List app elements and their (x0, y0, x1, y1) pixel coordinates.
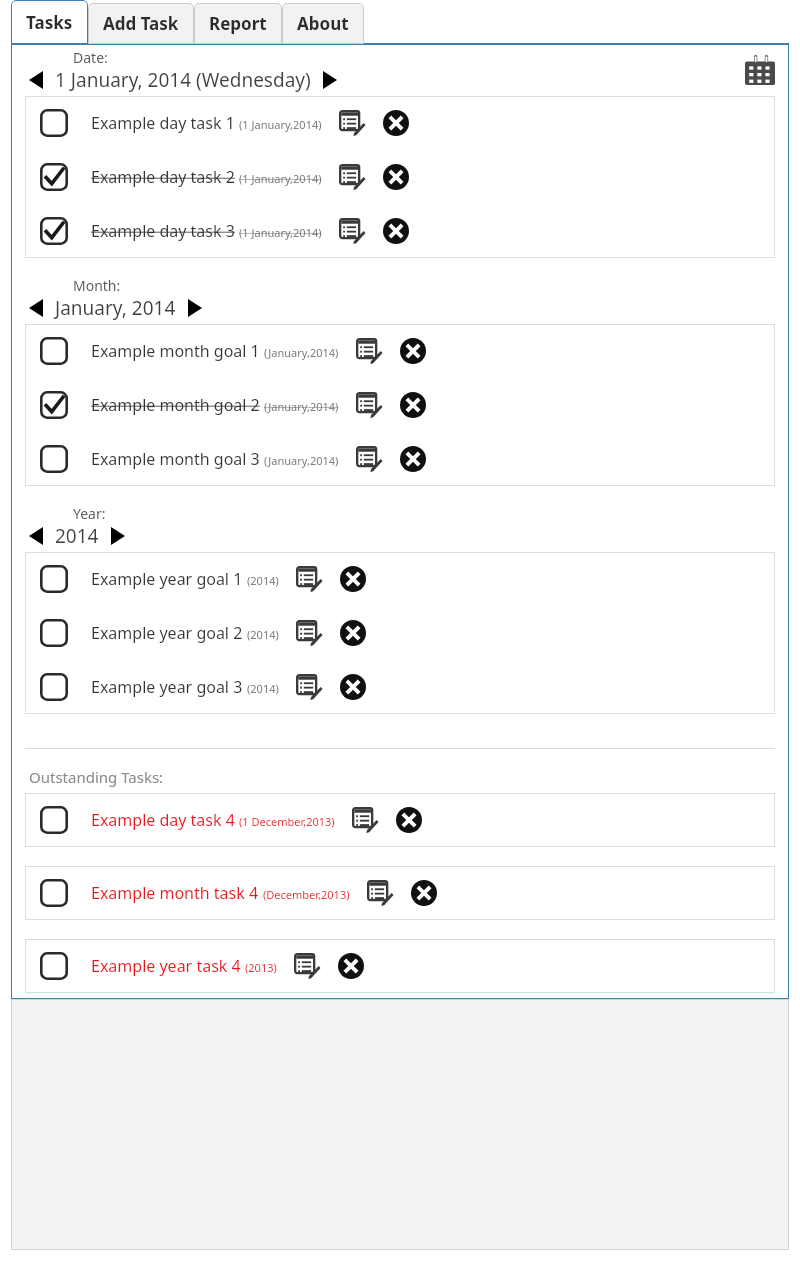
button[interactable]: Toggle done (25, 204, 775, 258)
button[interactable]: Previous (25, 297, 47, 319)
button[interactable]: Toggle done (37, 106, 71, 140)
button[interactable]: Next (107, 525, 129, 547)
button[interactable]: Delete task (337, 617, 369, 649)
staticText: Report (209, 12, 267, 35)
button[interactable]: Add Task (88, 3, 194, 44)
button[interactable]: Previous (25, 69, 47, 91)
staticText: (January,2014) (264, 345, 339, 360)
staticText: 2014 (55, 523, 99, 549)
button[interactable]: Edit task (364, 877, 396, 909)
button[interactable]: Next (319, 69, 341, 91)
staticText: Month: (73, 276, 121, 295)
staticText: Add Task (103, 12, 179, 35)
staticText: (2013) (245, 960, 277, 975)
staticText: Example year task 4 (91, 955, 241, 977)
staticText: (1 January,2014) (239, 171, 322, 186)
button[interactable]: Edit task (293, 563, 325, 595)
button[interactable]: Delete task (380, 161, 412, 193)
button[interactable]: Delete task (337, 563, 369, 595)
button[interactable]: Edit task (336, 215, 368, 247)
button[interactable]: Edit task (293, 617, 325, 649)
button[interactable]: Toggle done (37, 160, 71, 194)
staticText: Example month task 4 (91, 882, 259, 904)
button[interactable]: Toggle done (25, 324, 775, 378)
staticText: (2014) (247, 573, 279, 588)
button[interactable]: Edit task (336, 161, 368, 193)
button[interactable]: Delete task (380, 215, 412, 247)
button[interactable]: Toggle done (25, 150, 775, 204)
button[interactable]: Delete task (397, 335, 429, 367)
staticText: Example year goal 3 (91, 676, 243, 698)
staticText: Date: (73, 48, 108, 67)
button[interactable]: Toggle done (37, 616, 71, 650)
staticText: Example day task 4 (91, 809, 235, 831)
button[interactable]: Previous (25, 525, 47, 547)
button[interactable]: Tasks (11, 0, 88, 44)
button[interactable]: About (282, 3, 364, 44)
button[interactable]: Edit task (293, 671, 325, 703)
staticText: Example month goal 1 (91, 340, 260, 362)
button[interactable]: Edit task (353, 389, 385, 421)
staticText: (1 January,2014) (239, 225, 322, 240)
staticText: Example month goal 3 (91, 448, 260, 470)
staticText: Outstanding Tasks: (29, 767, 164, 787)
staticText: (December,2013) (263, 887, 350, 902)
button[interactable]: Delete task (397, 389, 429, 421)
button[interactable]: Edit task (349, 804, 381, 836)
staticText: Example month goal 2 (91, 394, 260, 416)
button[interactable]: Pick date (745, 55, 775, 85)
button[interactable]: Toggle done (25, 866, 775, 920)
button[interactable]: Toggle done (25, 552, 775, 606)
button[interactable]: Delete task (380, 107, 412, 139)
button[interactable]: Report (194, 3, 282, 44)
staticText: Example year goal 2 (91, 622, 243, 644)
button[interactable]: Delete task (337, 671, 369, 703)
staticText: (January,2014) (264, 453, 339, 468)
staticText: About (297, 12, 349, 35)
button[interactable]: Toggle done (25, 793, 775, 847)
button[interactable]: Toggle done (25, 939, 775, 993)
button[interactable]: Toggle done (25, 606, 775, 660)
button[interactable]: Toggle done (25, 96, 775, 150)
button[interactable]: Toggle done (37, 442, 71, 476)
staticText: Example day task 1 (91, 112, 235, 134)
staticText: (1 January,2014) (239, 117, 322, 132)
button[interactable]: Toggle done (37, 388, 71, 422)
button[interactable]: Edit task (336, 107, 368, 139)
staticText: (January,2014) (264, 399, 339, 414)
button[interactable]: Toggle done (37, 214, 71, 248)
button[interactable]: Toggle done (25, 432, 775, 486)
button[interactable]: Edit task (291, 950, 323, 982)
button[interactable]: Delete task (335, 950, 367, 982)
button[interactable]: Delete task (393, 804, 425, 836)
staticText: Example year goal 1 (91, 568, 243, 590)
button[interactable]: Toggle done (37, 562, 71, 596)
button[interactable]: Next (184, 297, 206, 319)
staticText: Example day task 2 (91, 166, 235, 188)
staticText: (2014) (247, 627, 279, 642)
button[interactable]: Toggle done (37, 803, 71, 837)
button[interactable]: Toggle done (37, 334, 71, 368)
button[interactable]: Toggle done (37, 670, 71, 704)
button[interactable]: Delete task (408, 877, 440, 909)
staticText: Example day task 3 (91, 220, 235, 242)
staticText: (1 December,2013) (239, 814, 335, 829)
button[interactable]: Toggle done (25, 378, 775, 432)
staticText: Year: (73, 504, 106, 523)
button[interactable]: Edit task (353, 335, 385, 367)
button[interactable]: Toggle done (37, 876, 71, 910)
button[interactable]: Delete task (397, 443, 429, 475)
staticText: Tasks (26, 11, 73, 34)
button[interactable]: Toggle done (37, 949, 71, 983)
staticText: January, 2014 (55, 295, 176, 321)
button[interactable]: Toggle done (25, 660, 775, 714)
staticText: 1 January, 2014 (Wednesday) (55, 67, 311, 93)
staticText: (2014) (247, 681, 279, 696)
button[interactable]: Edit task (353, 443, 385, 475)
